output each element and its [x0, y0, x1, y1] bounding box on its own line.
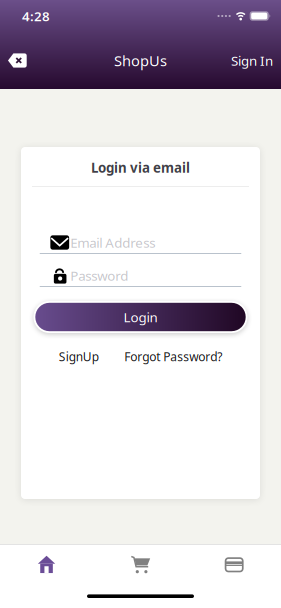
button[interactable] — [94, 545, 187, 574]
button[interactable] — [187, 546, 281, 572]
staticText: 4:28 — [22, 7, 50, 25]
staticText: SignUp — [59, 348, 99, 364]
button[interactable]: SignUp — [59, 348, 99, 364]
button[interactable]: Sign In — [231, 46, 281, 75]
button[interactable] — [0, 545, 94, 573]
button[interactable]: Login — [33, 301, 247, 333]
staticText: Password — [70, 267, 128, 284]
staticText: Login via email — [91, 159, 190, 176]
button[interactable] — [0, 49, 27, 72]
staticText: ShopUs — [114, 51, 167, 70]
staticText: Email Address — [70, 234, 155, 251]
staticText: Login — [123, 308, 157, 326]
button[interactable]: Forgot Password? — [124, 348, 222, 364]
staticText: Sign In — [231, 52, 273, 69]
staticText: Forgot Password? — [124, 348, 222, 364]
